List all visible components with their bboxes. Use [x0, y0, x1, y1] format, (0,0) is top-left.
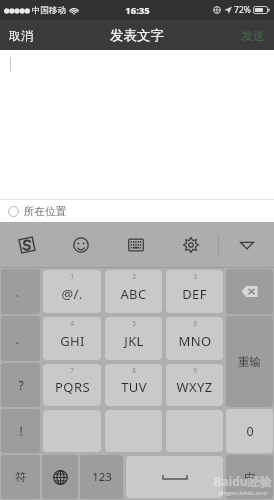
staticText: ABC: [120, 285, 147, 303]
staticText: 所在位置: [24, 205, 66, 218]
button[interactable]: Emoji: [54, 222, 108, 268]
button[interactable]: ?: [1, 363, 40, 407]
staticText: WXYZ: [176, 378, 213, 396]
button[interactable]: 1: [43, 270, 101, 313]
button[interactable]: 3: [166, 270, 223, 313]
button[interactable]: 7: [43, 364, 101, 406]
staticText: 0: [246, 423, 254, 440]
button[interactable]: 6: [166, 317, 223, 360]
button[interactable]: 符: [1, 455, 40, 499]
staticText: 中: [244, 470, 256, 484]
button[interactable]: !: [1, 409, 40, 453]
staticText: MNO: [178, 332, 212, 350]
staticText: 16:35: [125, 4, 150, 17]
button[interactable]: Backspace: [226, 269, 273, 314]
staticText: 中国移动: [32, 5, 66, 16]
staticText: 72%: [234, 4, 251, 16]
button[interactable]: 发送: [232, 20, 274, 50]
staticText: 6: [193, 319, 197, 328]
staticText: 取消: [9, 28, 33, 43]
button[interactable]: Hide keyboard: [219, 222, 274, 268]
button[interactable]: 4: [43, 317, 101, 360]
button[interactable]: 9: [166, 364, 223, 406]
staticText: 8: [132, 366, 136, 375]
button[interactable]: 重输: [226, 316, 273, 407]
staticText: 5: [132, 319, 136, 328]
button[interactable]: Sogou input method: [0, 222, 54, 268]
staticText: 9: [193, 366, 197, 375]
staticText: 发送: [241, 28, 265, 43]
staticText: 7: [70, 366, 74, 375]
staticText: DEF: [182, 285, 207, 303]
staticText: @/.: [61, 285, 83, 303]
button[interactable]: Switch input language: [42, 455, 78, 499]
staticText: 1: [70, 272, 74, 281]
staticText: 4: [70, 319, 74, 328]
staticText: ?: [18, 377, 24, 393]
staticText: PQRS: [55, 378, 90, 396]
staticText: 3: [193, 272, 197, 281]
staticText: !: [19, 423, 23, 439]
staticText: jingyan.baidu.com: [219, 489, 267, 496]
staticText: Baidu经验: [213, 473, 272, 489]
button[interactable]: 中: [226, 455, 273, 499]
button[interactable]: 取消: [0, 20, 42, 50]
staticText: TUV: [121, 378, 147, 396]
staticText: 发表文字: [110, 27, 164, 44]
button[interactable]: 5: [105, 317, 162, 360]
staticText: 重输: [238, 355, 261, 369]
button[interactable]: Space: [126, 456, 223, 498]
button[interactable]: 2: [105, 270, 162, 313]
staticText: 2: [132, 272, 136, 281]
button[interactable]: 所在位置: [0, 200, 274, 222]
button[interactable]: 8: [105, 364, 162, 406]
button[interactable]: 123: [80, 455, 123, 499]
staticText: JKL: [124, 332, 144, 350]
button[interactable]: Settings: [163, 222, 218, 268]
staticText: 符: [15, 470, 27, 484]
staticText: GHI: [60, 332, 85, 350]
button[interactable]: 0: [226, 409, 273, 453]
button[interactable]: Keyboard layout: [108, 222, 163, 268]
staticText: 、: [15, 285, 26, 299]
staticText: 123: [92, 469, 112, 485]
staticText: 。: [15, 332, 26, 346]
